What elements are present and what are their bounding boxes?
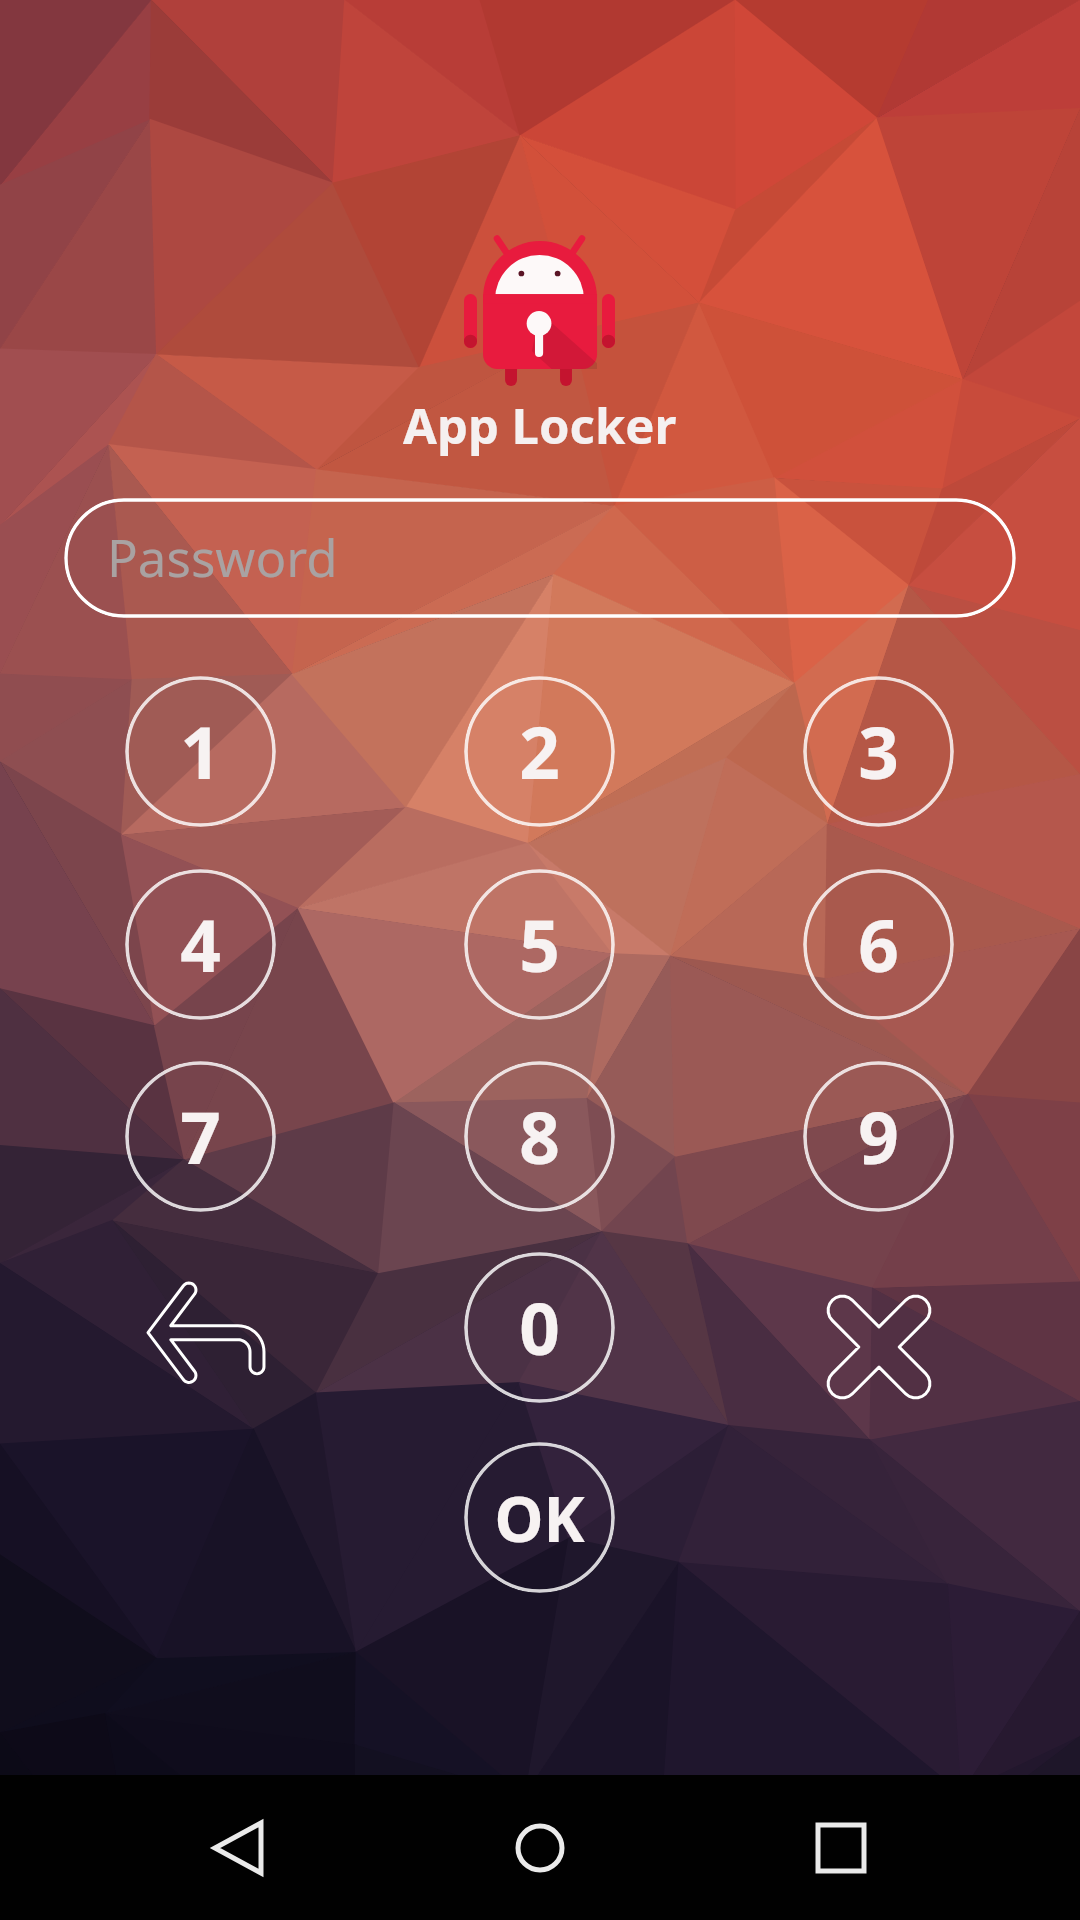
button[interactable]: 6 (803, 869, 954, 1020)
button[interactable]: Recent apps (793, 1800, 889, 1896)
button[interactable]: 9 (803, 1061, 954, 1212)
button[interactable]: OK (464, 1442, 615, 1593)
staticText: 7 (180, 1088, 221, 1185)
staticText: Password (107, 522, 338, 591)
staticText: 0 (519, 1279, 560, 1376)
staticText: 9 (858, 1088, 899, 1185)
button[interactable]: Home (492, 1800, 588, 1896)
button[interactable]: 7 (125, 1061, 276, 1212)
button[interactable]: 8 (464, 1061, 615, 1212)
button[interactable]: 3 (803, 676, 954, 827)
button[interactable]: 0 (464, 1252, 615, 1403)
button[interactable]: Password (64, 498, 1016, 618)
staticText: App Locker (403, 392, 677, 459)
button[interactable]: 2 (464, 676, 615, 827)
staticText: 2 (519, 703, 560, 800)
staticText: 1 (180, 703, 221, 800)
staticText: 6 (858, 896, 899, 993)
staticText: 8 (519, 1088, 560, 1185)
staticText: 3 (858, 703, 899, 800)
button[interactable]: 5 (464, 869, 615, 1020)
button[interactable]: 1 (125, 676, 276, 827)
button[interactable]: Backspace (148, 1283, 257, 1387)
staticText: OK (494, 1476, 585, 1560)
button[interactable]: 4 (125, 869, 276, 1020)
button[interactable]: Back (178, 1800, 274, 1896)
button[interactable]: Clear (825, 1293, 933, 1401)
staticText: 5 (519, 896, 560, 993)
staticText: 4 (180, 896, 221, 993)
